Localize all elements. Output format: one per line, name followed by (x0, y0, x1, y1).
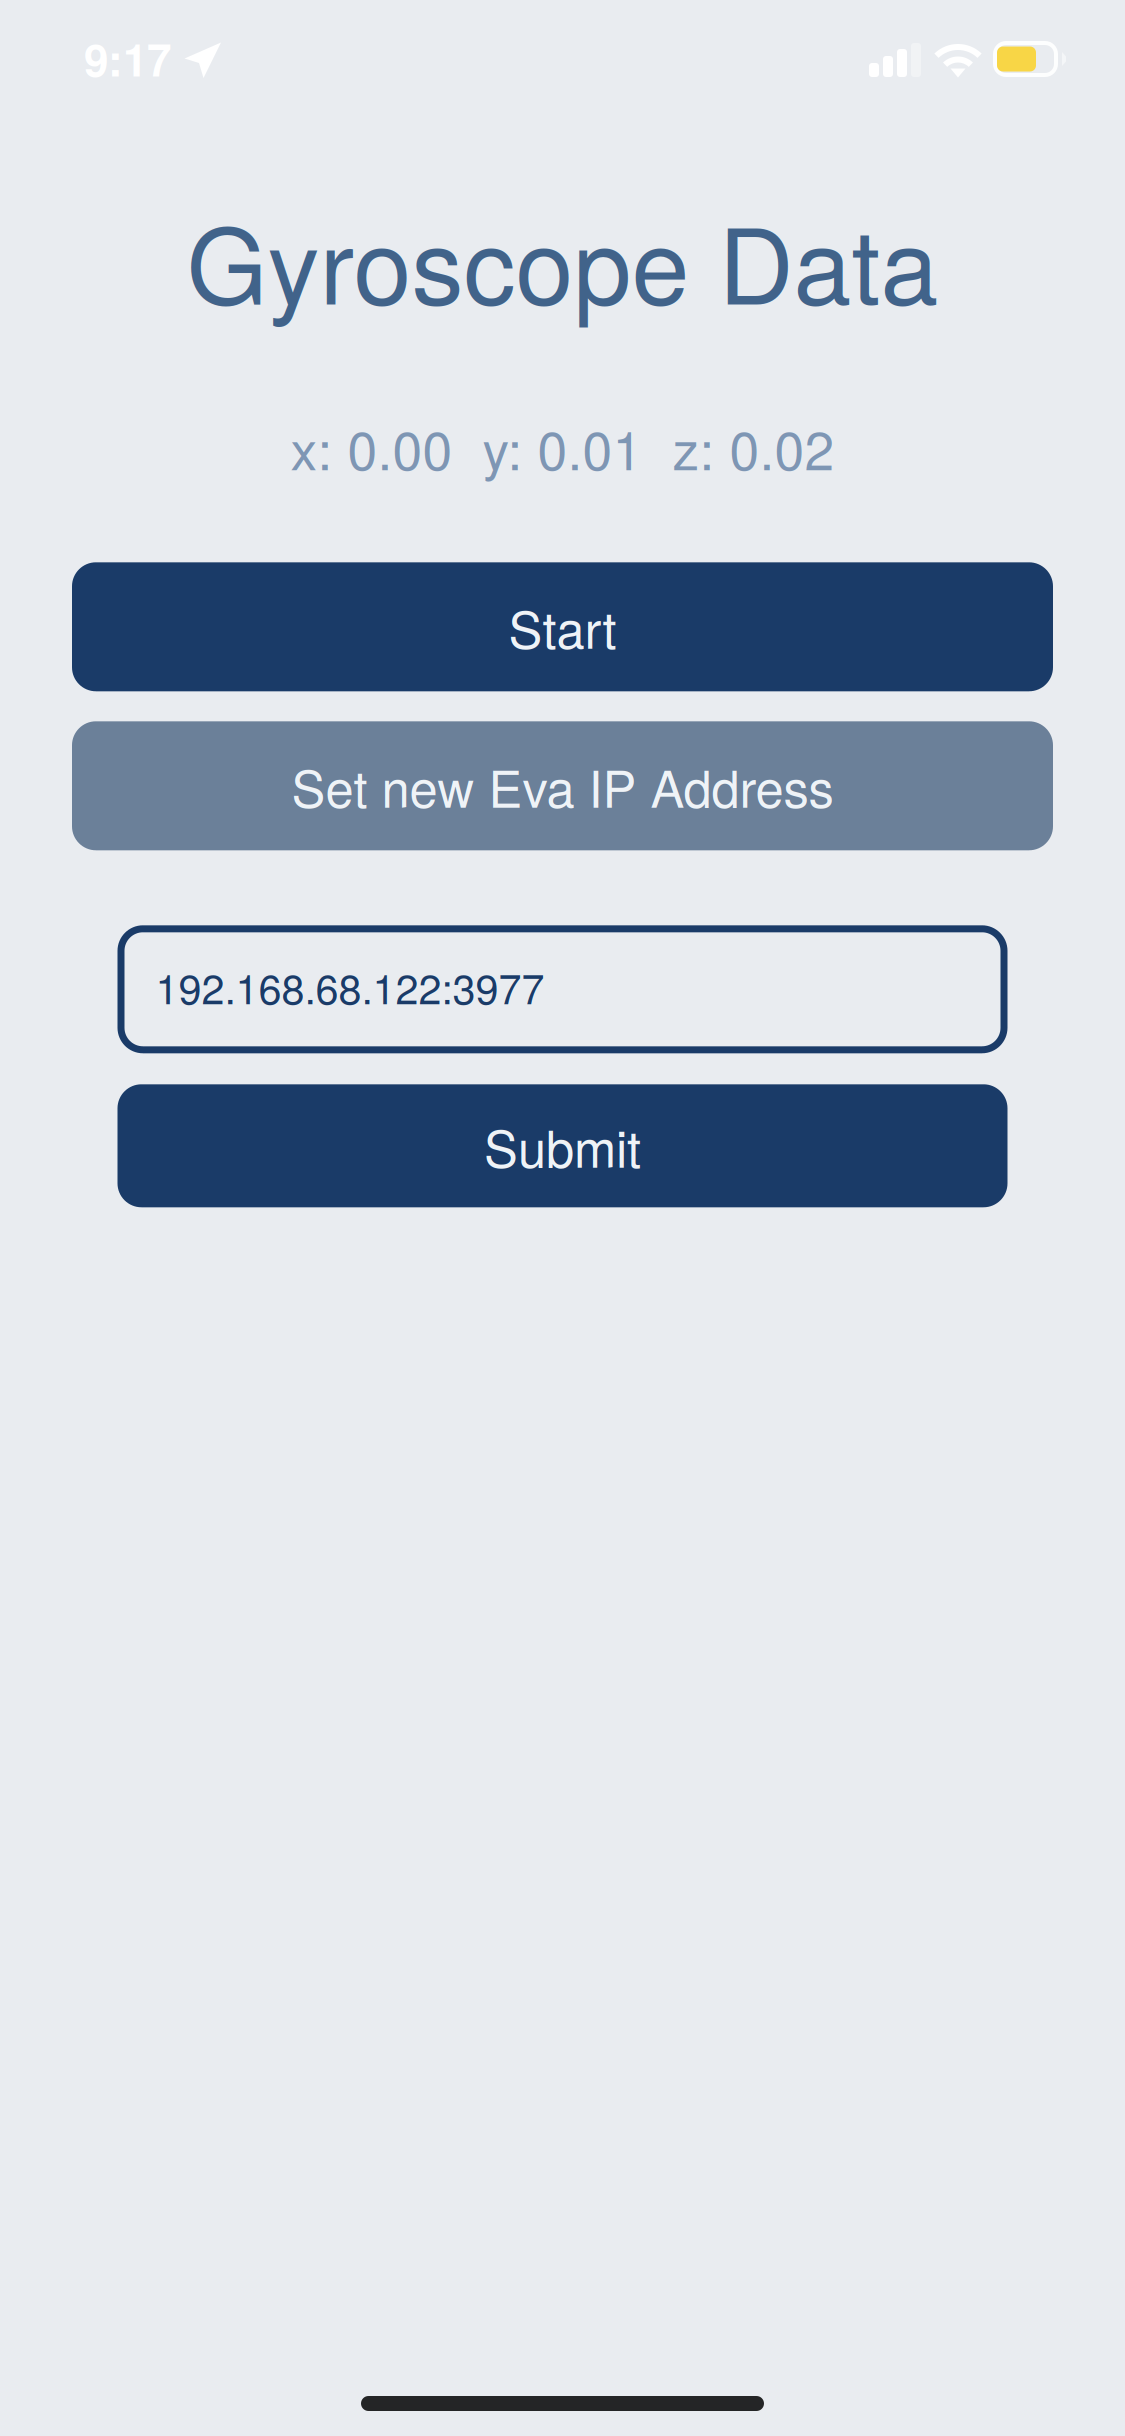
button[interactable]: 192.168.68.122:3977 (117, 925, 1007, 1053)
staticText: 192.168.68.122:3977 (155, 957, 544, 1016)
staticText: Submit (484, 1109, 641, 1182)
staticText: x: 0.00 y: 0.01 z: 0.02 (290, 409, 834, 485)
button[interactable]: Set new Eva IP Address (72, 721, 1053, 850)
staticText: 9:17 (84, 27, 171, 90)
staticText: Set new Eva IP Address (291, 749, 833, 822)
staticText: Gyroscope Data (186, 185, 938, 334)
button[interactable]: Start (72, 562, 1053, 691)
button[interactable]: Submit (117, 1084, 1007, 1207)
staticText: Start (508, 590, 616, 663)
